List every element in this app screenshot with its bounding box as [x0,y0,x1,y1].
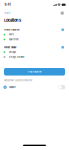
button[interactable]: Support [0,84,69,90]
staticText: Apartment [9,38,19,41]
staticText: Edit [5,11,11,15]
button[interactable]: Storage container [0,55,69,59]
button[interactable]: Location settings [61,28,65,32]
button[interactable]: Apartment [0,37,69,42]
staticText: Forest house [4,46,16,49]
button[interactable]: Edit [4,11,11,15]
button[interactable]: Add location [4,68,65,75]
staticText: Cottage [9,51,16,53]
button[interactable]: Settings [60,11,64,15]
staticText: Storage container [9,56,25,58]
button[interactable]: Cottage [0,50,69,55]
staticText: Support [9,86,16,88]
staticText: Locations [4,18,21,23]
button[interactable]: Location settings [61,45,65,49]
staticText: Home location [4,28,19,31]
staticText: Add location [28,70,41,73]
staticText: Remember selected network [4,79,32,82]
staticText: Home [9,33,14,36]
staticText: 9:41 [5,3,11,6]
button[interactable]: Home [0,32,69,37]
